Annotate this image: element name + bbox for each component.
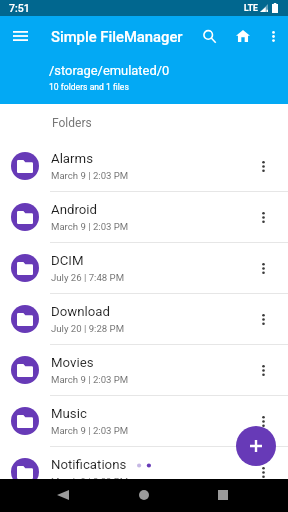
staticText: March 9 | 2:03 PM	[51, 221, 129, 232]
staticText: 10 folders and 1 files	[49, 82, 129, 92]
button[interactable]: Item options	[251, 401, 275, 441]
button[interactable]: Home	[124, 479, 164, 512]
staticText: Android	[51, 202, 98, 218]
button[interactable]: Add	[236, 426, 276, 466]
button[interactable]: Recent apps	[203, 479, 243, 512]
button[interactable]: Notifications	[0, 447, 288, 479]
staticText: Movies	[51, 355, 94, 371]
staticText: LTE	[244, 3, 258, 13]
staticText: Notifications	[51, 457, 127, 473]
button[interactable]: Back	[43, 479, 83, 512]
button[interactable]: Search	[192, 16, 226, 56]
button[interactable]: Item options	[251, 299, 275, 339]
staticText: March 9 | 2:03 PM	[51, 374, 129, 385]
staticText: Simple FileManager	[51, 28, 183, 45]
staticText: /storage/emulated/0	[49, 63, 170, 78]
button[interactable]: More options	[259, 16, 287, 56]
button[interactable]: Item options	[251, 248, 275, 288]
button[interactable]: Download	[0, 294, 288, 345]
staticText: March 9 | 2:03 PM	[51, 476, 129, 479]
button[interactable]: DCIM	[0, 243, 288, 294]
staticText: Download	[51, 304, 110, 320]
staticText: March 9 | 2:03 PM	[51, 170, 129, 181]
staticText: DCIM	[51, 253, 84, 269]
button[interactable]: Navigation menu	[0, 16, 40, 56]
staticText: July 26 | 7:48 PM	[51, 272, 125, 283]
staticText: Folders	[52, 116, 92, 130]
staticText: Alarms	[51, 151, 94, 167]
button[interactable]: Home folder	[226, 16, 260, 56]
staticText: July 20 | 9:28 PM	[51, 323, 125, 334]
button[interactable]: Music	[0, 396, 288, 447]
staticText: 7:51	[9, 2, 30, 14]
button[interactable]: Item options	[251, 146, 275, 186]
button[interactable]: Item options	[251, 452, 275, 479]
button[interactable]: Movies	[0, 345, 288, 396]
button[interactable]: Alarms	[0, 141, 288, 192]
staticText: Music	[51, 406, 87, 422]
button[interactable]: Item options	[251, 350, 275, 390]
button[interactable]: Item options	[251, 197, 275, 237]
staticText: March 9 | 2:03 PM	[51, 425, 129, 436]
button[interactable]: Android	[0, 192, 288, 243]
